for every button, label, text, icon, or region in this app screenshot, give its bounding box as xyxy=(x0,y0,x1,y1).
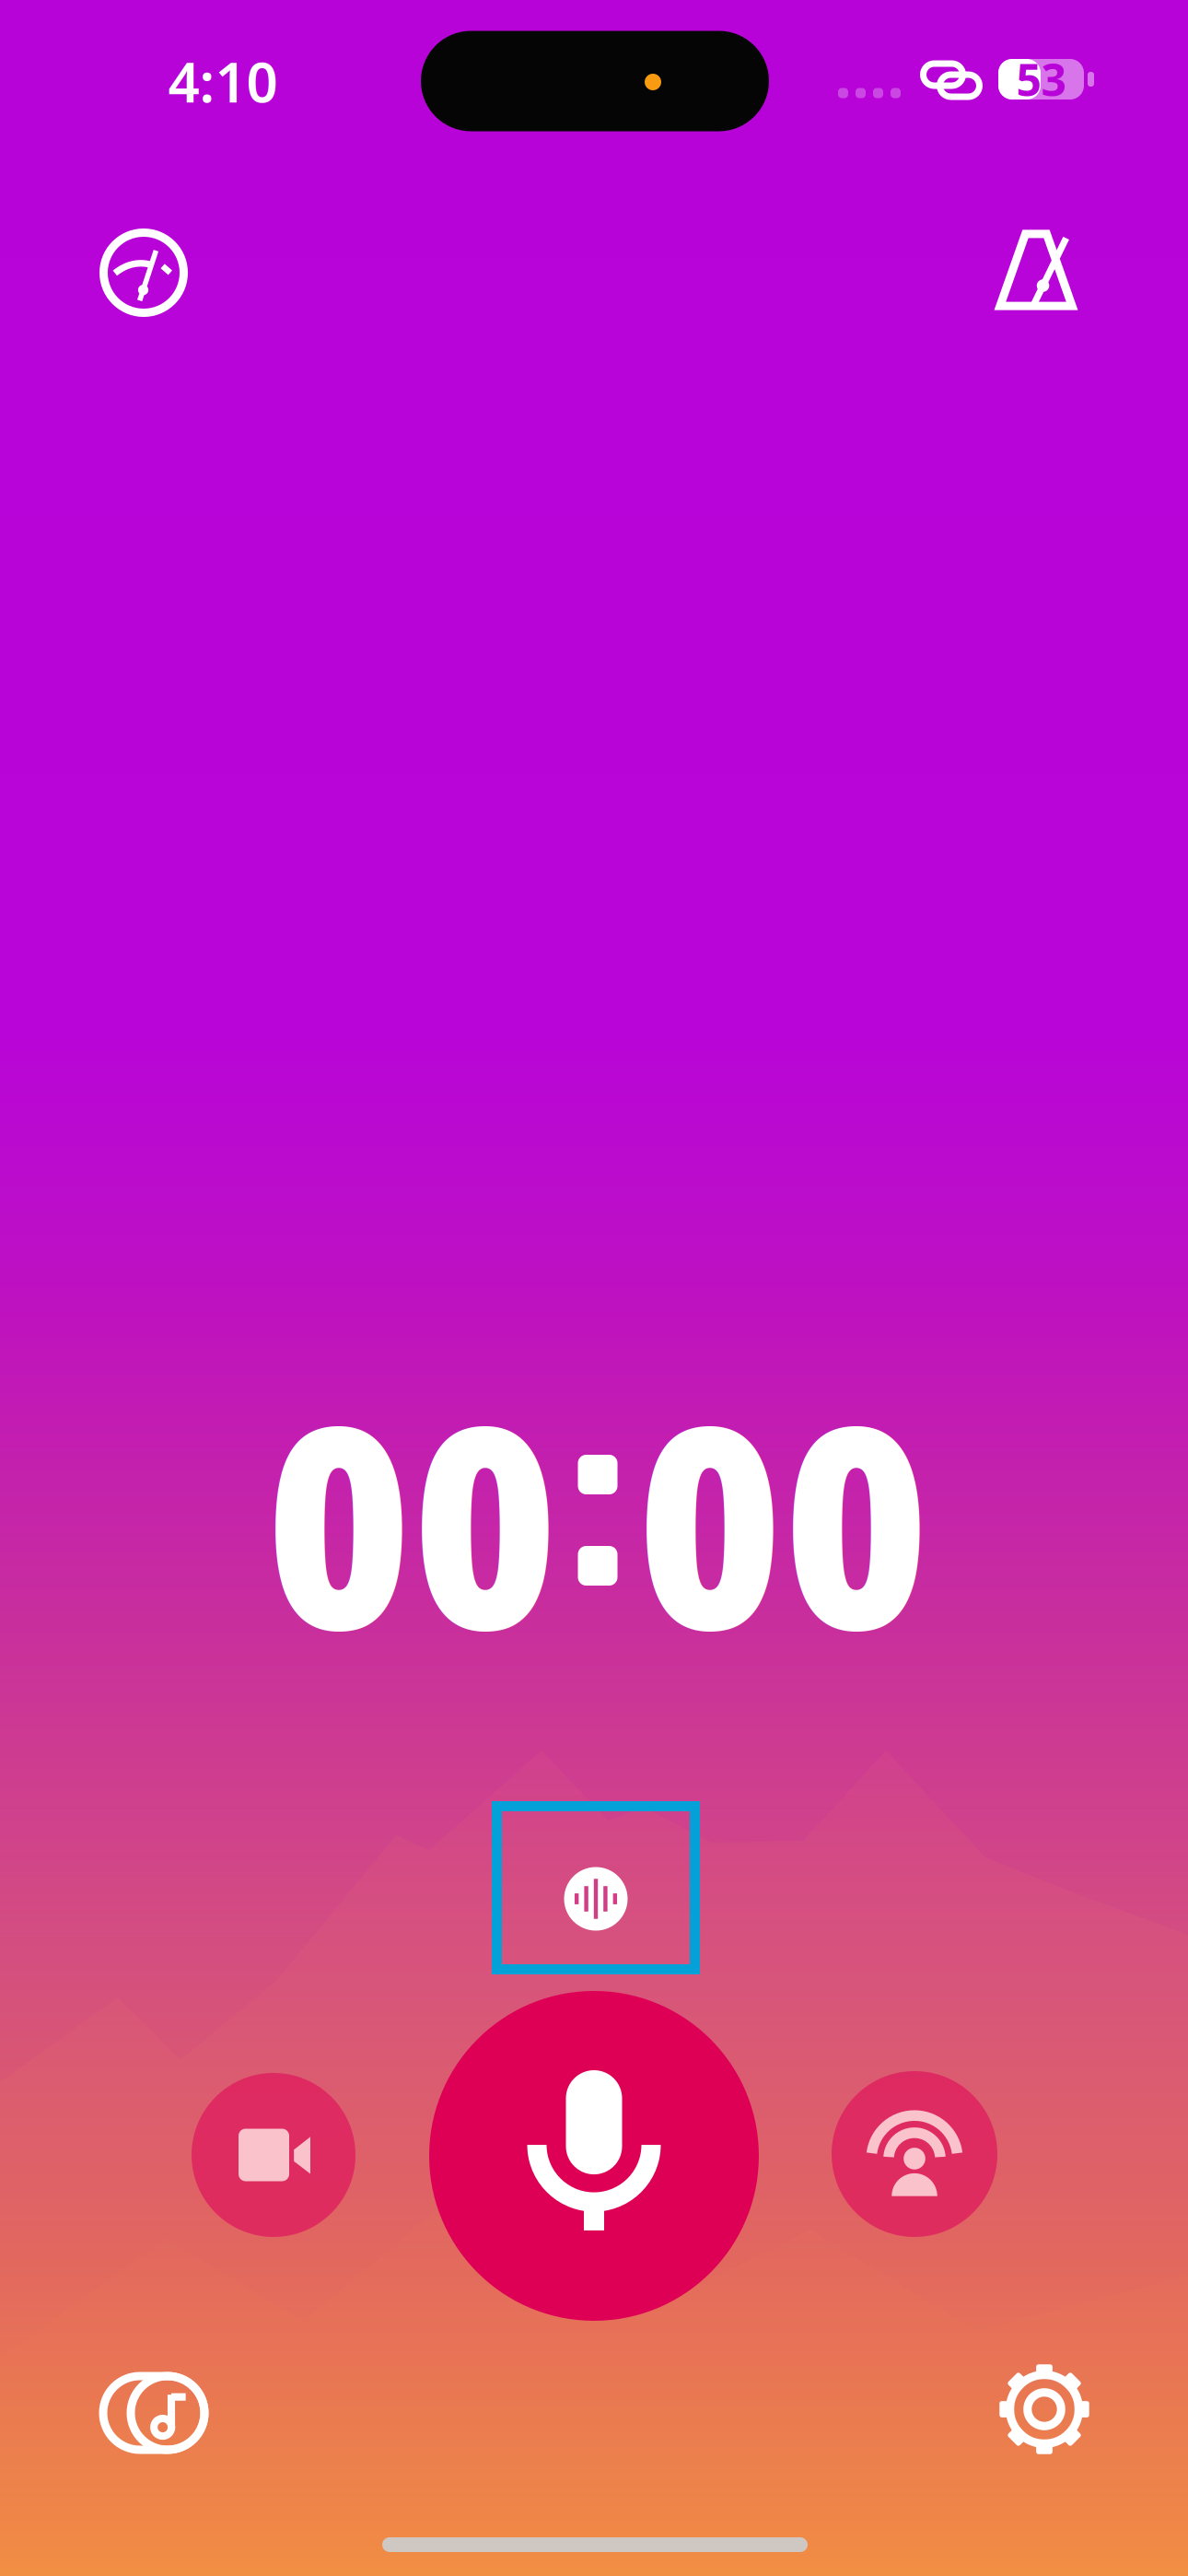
button[interactable]: Live broadcast xyxy=(832,2071,997,2237)
button[interactable]: Settings xyxy=(975,2340,1113,2478)
button[interactable]: Record xyxy=(429,1991,759,2321)
staticText: 00 xyxy=(637,1329,930,1711)
button[interactable]: Tuner xyxy=(75,204,213,342)
button[interactable]: Audio level xyxy=(497,1806,695,1969)
button[interactable]: Record video xyxy=(192,2073,355,2237)
button[interactable]: Metronome xyxy=(967,201,1105,339)
button[interactable]: Library xyxy=(80,2344,227,2482)
staticText: 53 xyxy=(1016,50,1066,109)
staticText: 00 xyxy=(266,1329,559,1711)
staticText: 4:10 xyxy=(168,44,278,118)
